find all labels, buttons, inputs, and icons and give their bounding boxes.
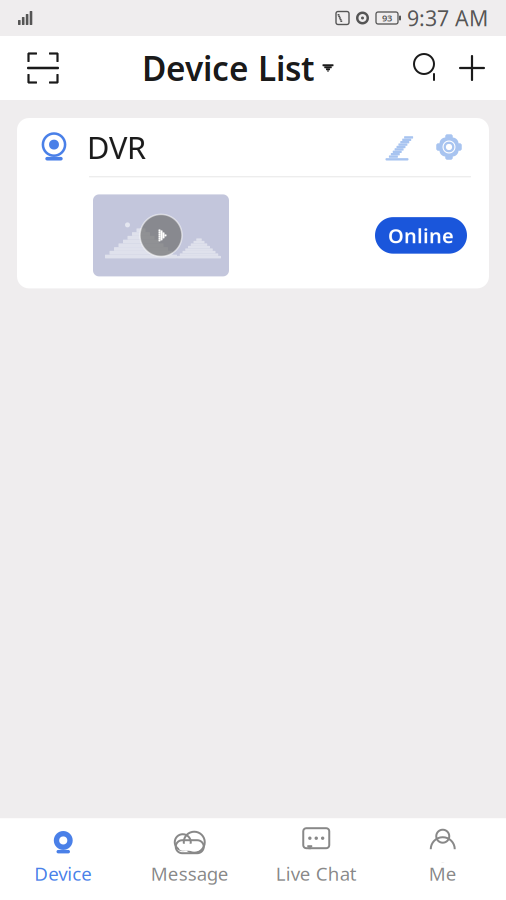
button[interactable]: Message [126,818,253,900]
staticText: 9:37 AM [407,4,488,32]
button[interactable]: Edit device name [379,129,415,165]
button[interactable]: Play live view [93,194,229,276]
staticText: Device List [142,46,315,90]
button[interactable]: Device settings [431,129,467,165]
staticText: Device [34,861,92,886]
staticText: Me [429,861,457,886]
staticText: Live Chat [276,861,357,886]
staticText: 93 [382,12,392,24]
staticText: DVR [87,127,146,167]
staticText: Message [151,861,229,886]
button[interactable]: Add device [458,48,486,88]
button[interactable]: Search [410,48,438,88]
staticText: Online [388,222,454,249]
button[interactable]: Device List [142,38,334,98]
button[interactable]: Me [379,818,506,900]
button[interactable]: Scan QR code [20,43,66,93]
button[interactable]: Device [0,818,126,900]
button[interactable]: Live Chat [253,818,379,900]
